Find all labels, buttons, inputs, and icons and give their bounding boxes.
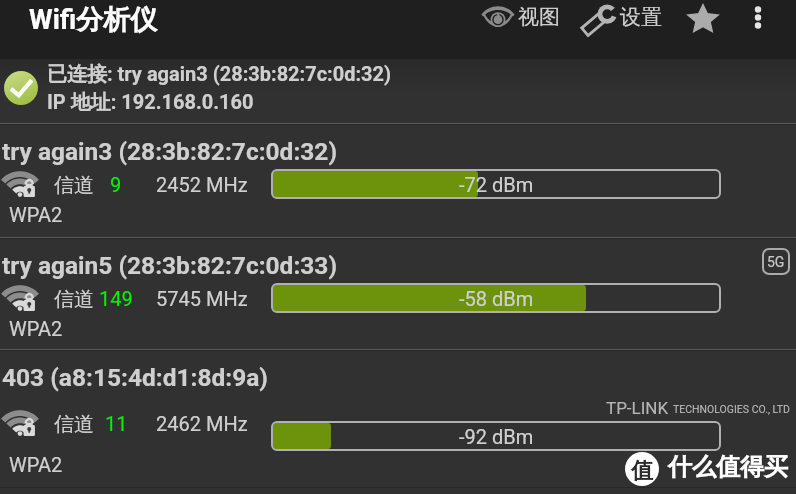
staticText: WPA2 [9,317,63,340]
staticText: 149 [99,287,133,310]
staticText: try again5 (28:3b:82:7c:0d:33) [2,251,338,280]
staticText: 信道 [54,412,94,437]
staticText: WPA2 [9,203,63,226]
staticText: -72 dBm [459,173,534,196]
staticText: IP 地址: 192.168.0.160 [47,90,254,115]
button[interactable]: Favorite [681,1,725,35]
staticText: WPA2 [9,453,63,476]
staticText: 信道 [54,173,94,198]
staticText: TP-LINK [606,398,669,418]
button[interactable]: More options [737,0,779,40]
staticText: try again3 (28:3b:82:7c:0d:32) [2,137,338,166]
button[interactable]: 设置 [576,2,668,52]
staticText: 5745 MHz [156,287,248,310]
staticText: Wifi分析仪 [29,3,158,37]
staticText: 2462 MHz [156,412,248,435]
staticText: 值 [631,457,653,485]
staticText: 视图 [518,4,560,30]
button[interactable]: try again3 (28:3b:82:7c:0d:32) [0,122,796,236]
staticText: 11 [105,412,128,435]
staticText: 403 (a8:15:4d:d1:8d:9a) [2,363,268,392]
button[interactable]: 403 (a8:15:4d:d1:8d:9a) [0,348,796,494]
staticText: 什么值得买 [668,452,788,482]
staticText: 已连接: try again3 (28:3b:82:7c:0d:32) [47,62,392,87]
staticText: -58 dBm [459,287,534,310]
staticText: 5G [767,254,785,270]
button[interactable]: 视图 [476,2,562,52]
staticText: -92 dBm [459,425,534,448]
staticText: 信道 [54,287,94,312]
staticText: 9 [110,173,122,196]
button[interactable]: 已连接: try again3 (28:3b:82:7c:0d:32) [0,59,796,122]
button[interactable]: try again5 (28:3b:82:7c:0d:33) [0,236,796,348]
staticText: TECHNOLOGIES CO., LTD [673,403,791,415]
staticText: 设置 [620,4,662,30]
staticText: 2452 MHz [156,173,248,196]
